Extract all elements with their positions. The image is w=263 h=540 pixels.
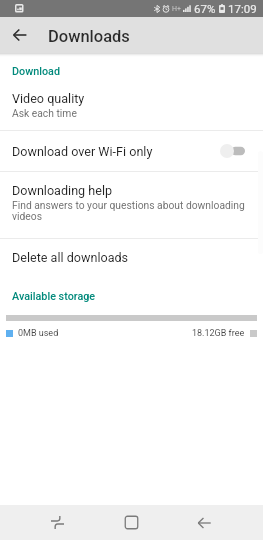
staticText: 0MB used (18, 328, 59, 339)
staticText: Ask each time (12, 107, 77, 119)
staticText: Downloads (48, 27, 130, 46)
staticText: Video quality (12, 91, 85, 106)
staticText: 18.12GB free (192, 328, 245, 339)
staticText: 17:09 (228, 2, 257, 15)
button[interactable]: Recent apps (42, 505, 73, 540)
staticText: Download over Wi-Fi only (12, 144, 220, 159)
button[interactable]: Back (189, 505, 220, 540)
staticText: Available storage (12, 290, 96, 303)
button[interactable]: Video quality (0, 91, 263, 119)
button[interactable]: Home (116, 505, 147, 540)
staticText: H+ (172, 5, 181, 13)
staticText: Delete all downloads (12, 250, 129, 265)
staticText: 67% (194, 2, 216, 15)
button[interactable]: Download over Wi-Fi only (0, 131, 263, 171)
staticText: Download (12, 65, 60, 78)
staticText: Find answers to your questions about dow… (12, 199, 259, 223)
button[interactable]: Delete all downloads (0, 239, 263, 280)
staticText: Downloading help (12, 183, 113, 198)
button[interactable]: Downloading help (0, 183, 263, 223)
button[interactable]: Back (0, 19, 36, 53)
